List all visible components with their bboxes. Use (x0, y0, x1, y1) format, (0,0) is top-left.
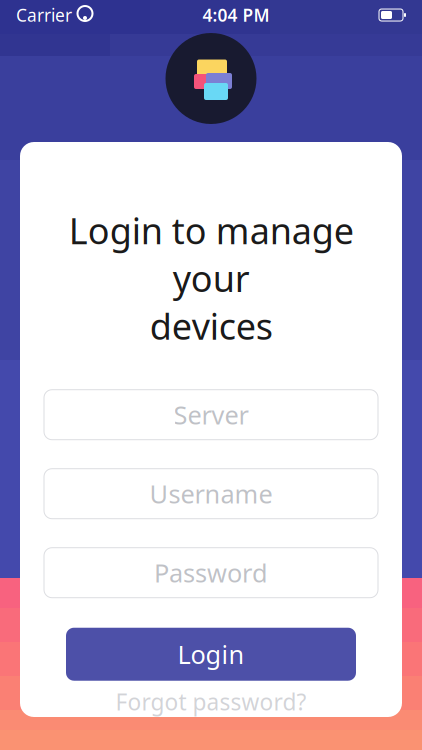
staticText: Login (177, 637, 244, 671)
staticText: Username (149, 477, 272, 510)
button[interactable]: Login (66, 628, 356, 681)
button[interactable]: Server (44, 390, 378, 440)
button[interactable]: Username (44, 469, 378, 519)
staticText: Carrier (16, 3, 72, 26)
button[interactable]: Forgot password? (66, 687, 356, 717)
staticText: 4:04 PM (202, 3, 269, 26)
staticText: Server (173, 398, 248, 431)
staticText: Password (154, 556, 268, 589)
staticText: Login to manage your devices (68, 206, 353, 350)
staticText: Forgot password? (115, 687, 306, 717)
button[interactable]: Password (44, 548, 378, 598)
